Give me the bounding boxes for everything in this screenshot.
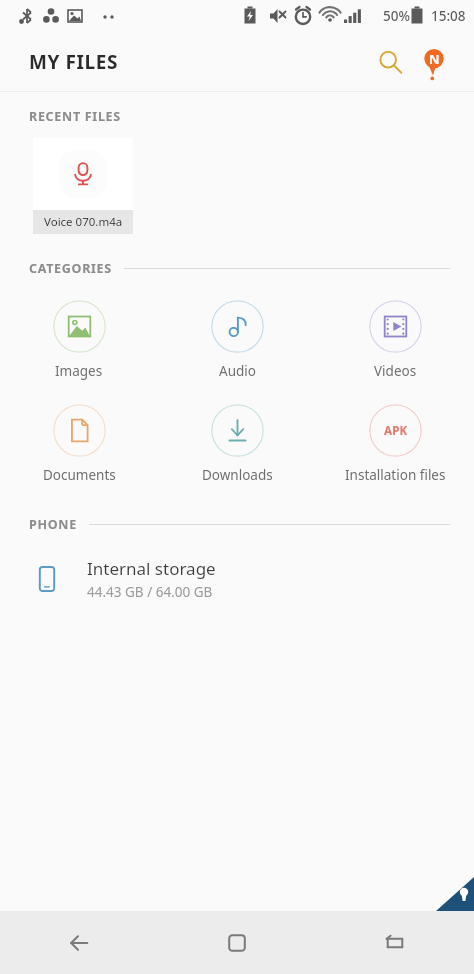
staticText: Documents	[43, 466, 116, 484]
staticText: Audio	[219, 362, 256, 380]
button[interactable]: Internal storage	[0, 548, 474, 610]
staticText: APK	[384, 423, 408, 439]
button[interactable]: Voice 070.m4a	[33, 138, 133, 234]
staticText: Internal storage	[87, 557, 216, 580]
staticText: Images	[55, 362, 103, 380]
button[interactable]: Videos	[316, 300, 474, 380]
staticText: 50%	[383, 7, 410, 25]
button[interactable]: Images	[0, 300, 158, 380]
staticText: Downloads	[202, 466, 273, 484]
staticText: Installation files	[345, 466, 446, 484]
staticText: N	[429, 50, 440, 68]
staticText: Videos	[374, 362, 417, 380]
button[interactable]: Home	[158, 911, 316, 974]
staticText: 15:08	[431, 7, 466, 25]
staticText: PHONE	[29, 516, 77, 533]
staticText: MY FILES	[29, 49, 119, 75]
button[interactable]: Back	[0, 911, 158, 974]
staticText: RECENT FILES	[29, 108, 121, 125]
button[interactable]: APK	[316, 404, 474, 484]
staticText: Voice 070.m4a	[44, 214, 123, 230]
button[interactable]: Audio	[158, 300, 316, 380]
staticText: 44.43 GB / 64.00 GB	[87, 583, 213, 601]
staticText: CATEGORIES	[29, 260, 112, 277]
button[interactable]: Norton account	[414, 42, 454, 82]
button[interactable]: Downloads	[158, 404, 316, 484]
button[interactable]: Documents	[0, 404, 158, 484]
button[interactable]: Recents	[316, 911, 474, 974]
button[interactable]: Search	[368, 40, 412, 84]
